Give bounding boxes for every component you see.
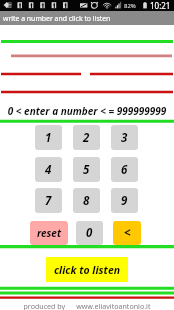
button[interactable]: 1 bbox=[35, 125, 62, 150]
staticText: 9 bbox=[121, 193, 128, 209]
button[interactable]: 2 bbox=[73, 125, 100, 150]
button[interactable]: 6 bbox=[111, 157, 138, 182]
staticText: 8 bbox=[83, 193, 90, 209]
staticText: produced by www.eliavitoantonio.it bbox=[0, 301, 174, 310]
staticText: 4 bbox=[45, 162, 52, 178]
button[interactable]: click to listen bbox=[46, 257, 128, 282]
button[interactable]: 9 bbox=[111, 188, 138, 213]
staticText: 6 bbox=[121, 162, 128, 178]
staticText: 10:21 bbox=[150, 0, 171, 11]
button[interactable]: 5 bbox=[73, 157, 100, 182]
button[interactable]: 3 bbox=[111, 125, 138, 150]
button[interactable]: < bbox=[113, 221, 141, 245]
staticText: 0 < enter a number < = 999999999 bbox=[0, 104, 174, 118]
button[interactable]: 7 bbox=[35, 188, 62, 213]
staticText: 82% bbox=[124, 2, 136, 10]
staticText: 2 bbox=[83, 130, 90, 146]
staticText: 1 bbox=[45, 130, 52, 146]
staticText: 0 bbox=[86, 225, 93, 241]
button[interactable]: 0 bbox=[76, 221, 103, 245]
staticText: < bbox=[124, 225, 131, 241]
button[interactable]: 4 bbox=[35, 157, 62, 182]
button[interactable]: 8 bbox=[73, 188, 100, 213]
staticText: reset bbox=[37, 226, 62, 240]
staticText: write a number and click to listen bbox=[3, 14, 111, 23]
staticText: 7 bbox=[45, 193, 52, 209]
staticText: 3 bbox=[121, 130, 128, 146]
staticText: 5 bbox=[83, 162, 90, 178]
staticText: click to listen bbox=[54, 263, 121, 277]
button[interactable]: reset bbox=[30, 221, 68, 245]
